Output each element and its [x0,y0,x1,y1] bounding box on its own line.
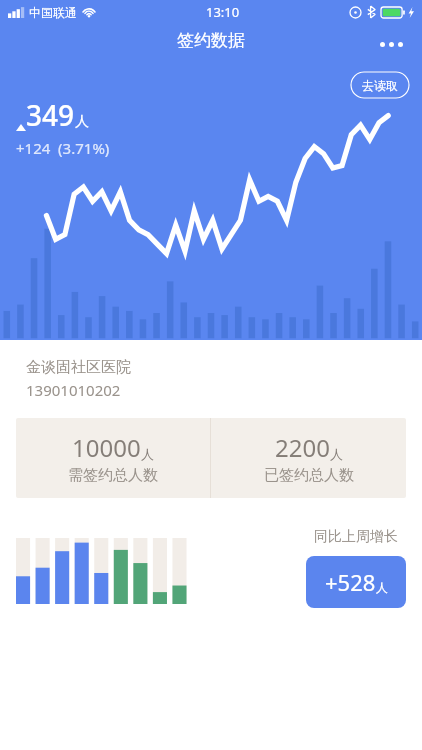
staticText: 已签约总人数 [264,466,354,485]
staticText: 同比上周增长 [314,528,398,546]
staticText: 人 [330,446,343,462]
button[interactable]: 2200 [211,418,406,498]
staticText: +528 [325,567,376,597]
staticText: 13:10 [206,3,240,21]
staticText: 10000 [72,431,141,464]
staticText: 去读取 [362,78,398,93]
staticText: 签约数据 [177,30,245,51]
staticText: +124 (3.71%) [16,138,110,158]
staticText: 金谈固社区医院 [26,358,131,377]
button[interactable]: More options [374,32,408,56]
staticText: 人 [376,580,388,595]
staticText: 349 [26,96,75,134]
staticText: 人 [75,113,89,131]
button[interactable]: 去读取 [350,71,410,99]
button[interactable]: 10000 [16,418,210,498]
staticText: 2200 [275,431,330,464]
staticText: 13901010202 [26,380,121,400]
button[interactable]: +528 [306,556,406,608]
staticText: 人 [141,446,154,462]
staticText: 需签约总人数 [68,466,158,485]
staticText: 中国联通 [29,5,77,20]
